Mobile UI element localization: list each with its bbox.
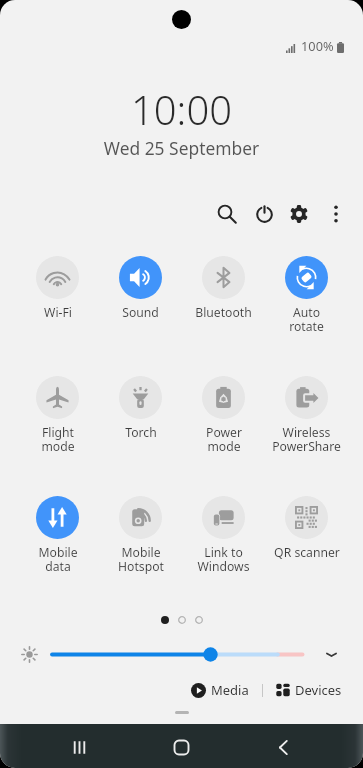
button[interactable]: Wireless PowerShare <box>265 376 348 454</box>
button[interactable]: Power mode <box>182 376 265 454</box>
staticText: Media <box>211 681 249 699</box>
staticText: Mobile data <box>38 544 78 574</box>
button[interactable]: Link to Windows <box>182 496 265 574</box>
staticText: Mobile Hotspot <box>118 544 164 574</box>
button[interactable]: Flight mode <box>16 376 99 454</box>
button[interactable]: Power <box>245 195 283 233</box>
button[interactable]: Recents <box>57 725 101 768</box>
button[interactable]: More options <box>317 195 355 233</box>
button[interactable]: Brightness <box>45 644 310 665</box>
staticText: Link to Windows <box>197 544 250 574</box>
staticText: Wireless PowerShare <box>272 424 341 454</box>
staticText: QR scanner <box>274 544 340 561</box>
button[interactable]: Expand <box>320 643 342 665</box>
staticText: Torch <box>125 424 157 441</box>
button[interactable]: QR scanner <box>265 496 348 561</box>
staticText: Wed 25 September <box>0 136 363 160</box>
staticText: Devices <box>295 681 342 699</box>
staticText: Power mode <box>206 424 242 454</box>
staticText: Wi-Fi <box>44 304 72 321</box>
staticText: 10:00 <box>0 82 363 136</box>
button[interactable]: Home <box>159 725 203 768</box>
staticText: Sound <box>122 304 159 321</box>
button[interactable]: Devices <box>273 676 345 704</box>
button[interactable]: Settings <box>280 195 318 233</box>
staticText: Flight mode <box>41 424 75 454</box>
staticText: 100% <box>301 37 334 54</box>
button[interactable]: Bluetooth <box>182 256 265 321</box>
staticText: Bluetooth <box>195 304 252 321</box>
button[interactable]: Wi-Fi <box>16 256 99 321</box>
button[interactable]: Auto rotate <box>265 256 348 334</box>
button[interactable]: Mobile data <box>16 496 99 574</box>
button[interactable]: Back <box>261 725 305 768</box>
button[interactable]: Search <box>208 195 246 233</box>
button[interactable]: Torch <box>99 376 182 441</box>
button[interactable]: Brightness level <box>18 643 41 666</box>
button[interactable]: Sound <box>99 256 182 321</box>
staticText: Auto rotate <box>289 304 324 334</box>
button[interactable]: Mobile Hotspot <box>99 496 182 574</box>
button[interactable]: Media <box>188 676 252 704</box>
